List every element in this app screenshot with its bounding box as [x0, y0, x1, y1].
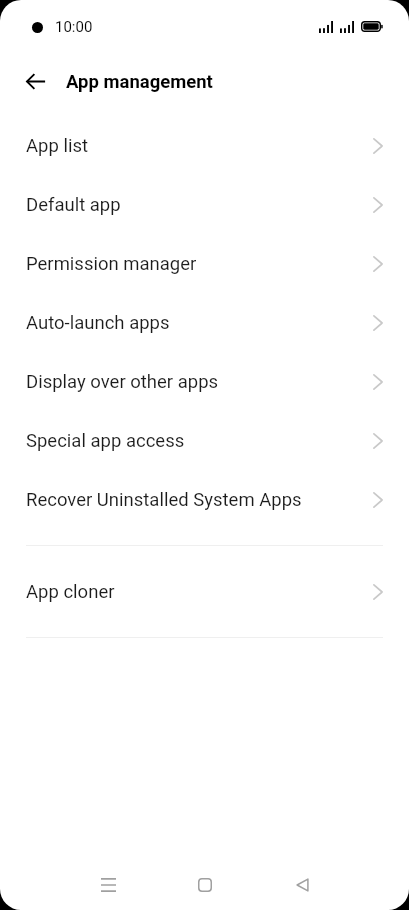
button[interactable]: Recent apps	[84, 861, 132, 909]
button[interactable]: App list	[0, 116, 409, 175]
button[interactable]: App cloner	[0, 562, 409, 621]
staticText: Auto-launch apps	[26, 312, 170, 334]
button[interactable]: Recover Uninstalled System Apps	[0, 470, 409, 529]
staticText: 10:00	[55, 18, 93, 36]
button[interactable]: Back	[278, 861, 326, 909]
button[interactable]: Back	[14, 59, 58, 103]
staticText: Special app access	[26, 430, 185, 452]
button[interactable]: Display over other apps	[0, 352, 409, 411]
button[interactable]: Permission manager	[0, 234, 409, 293]
button[interactable]: Default app	[0, 175, 409, 234]
staticText: App management	[66, 71, 213, 93]
staticText: Permission manager	[26, 253, 197, 275]
staticText: Default app	[26, 194, 121, 216]
staticText: App cloner	[26, 581, 115, 603]
button[interactable]: Home	[181, 861, 229, 909]
staticText: App list	[26, 135, 89, 157]
button[interactable]: Special app access	[0, 411, 409, 470]
staticText: Recover Uninstalled System Apps	[26, 489, 302, 511]
button[interactable]: Auto-launch apps	[0, 293, 409, 352]
staticText: Display over other apps	[26, 371, 219, 393]
